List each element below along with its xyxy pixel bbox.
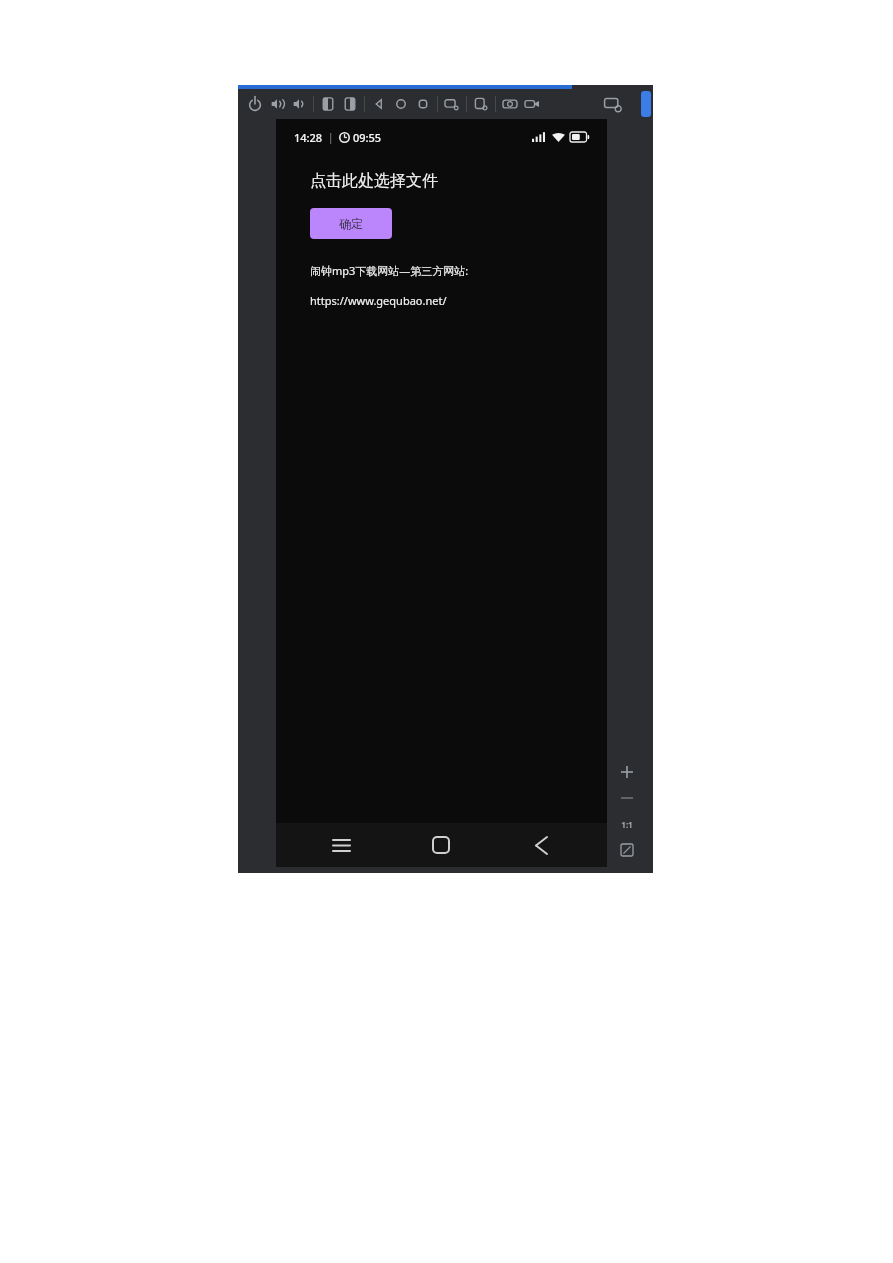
button[interactable]: Power xyxy=(244,93,266,115)
button[interactable] xyxy=(641,91,651,117)
button[interactable]: Fold xyxy=(441,93,463,115)
button[interactable]: 确定 xyxy=(310,208,392,239)
button[interactable]: Volume up xyxy=(266,93,288,115)
button[interactable]: Search xyxy=(603,94,623,114)
button[interactable]: Volume down xyxy=(288,93,310,115)
button[interactable]: Home xyxy=(390,93,412,115)
button[interactable]: Zoom out xyxy=(614,785,640,811)
button[interactable]: Back xyxy=(518,823,564,867)
button[interactable]: 1:1 xyxy=(614,811,640,837)
staticText: 09:55 xyxy=(353,130,382,145)
button[interactable]: Record screen xyxy=(521,93,543,115)
button[interactable]: Rotate left xyxy=(317,93,339,115)
button[interactable]: Zoom in xyxy=(614,759,640,785)
button[interactable]: Back xyxy=(368,93,390,115)
button[interactable]: Fit to screen xyxy=(614,837,640,863)
button[interactable]: Overview xyxy=(412,93,434,115)
staticText: 14:28 xyxy=(294,130,323,145)
button[interactable]: Settings xyxy=(470,93,492,115)
staticText: 确定 xyxy=(339,216,363,231)
button[interactable]: https://www.gequbao.net/ xyxy=(310,293,447,308)
button[interactable]: Rotate right xyxy=(339,93,361,115)
staticText: 1:1 xyxy=(621,819,633,830)
button[interactable]: Screenshot xyxy=(499,93,521,115)
staticText: | xyxy=(328,130,334,144)
button[interactable]: Menu xyxy=(318,823,364,867)
button[interactable]: 点击此处选择文件 xyxy=(310,171,438,191)
button[interactable]: Home xyxy=(418,823,464,867)
staticText: 闹钟mp3下载网站—第三方网站: xyxy=(310,263,469,278)
